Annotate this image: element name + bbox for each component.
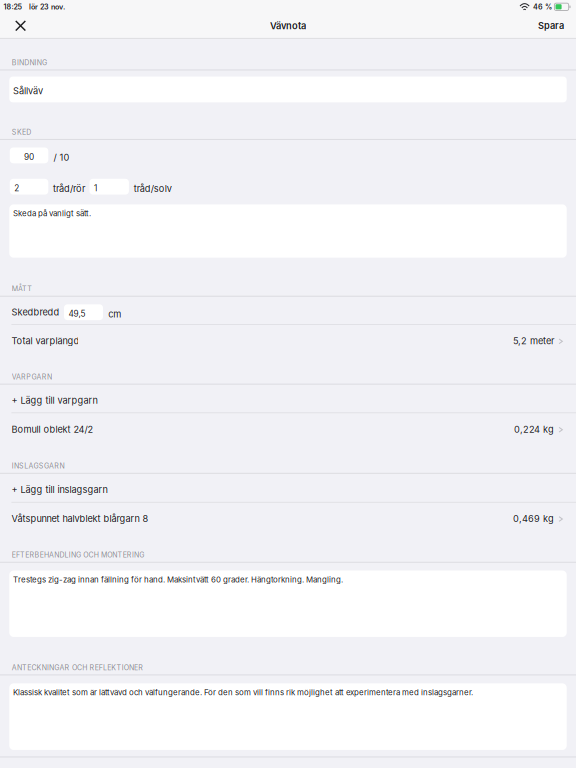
button[interactable]: Trestegs zig-zag innan fällning för hand… bbox=[9, 570, 567, 637]
staticText: Trestegs zig-zag innan fällning för hand… bbox=[13, 575, 343, 584]
staticText: + Lägg till inslagsgarn bbox=[11, 484, 107, 495]
staticText: cm bbox=[108, 309, 121, 320]
staticText: SKED bbox=[12, 128, 31, 136]
button[interactable]: 1 bbox=[89, 179, 129, 195]
staticText: Klassisk kvalitet som är lättvävd och vä… bbox=[13, 688, 473, 697]
staticText: ANTECKNINGAR OCH REFLEKTIONER bbox=[12, 663, 143, 672]
button[interactable]: 90 bbox=[10, 147, 48, 163]
button[interactable]: Skeda på vanligt sätt. bbox=[9, 204, 567, 258]
staticText: Bomull oblekt 24/2 bbox=[11, 424, 93, 435]
button[interactable]: + Lägg till inslagsgarn bbox=[0, 474, 576, 502]
staticText: 2 bbox=[14, 183, 19, 193]
button[interactable]: Total varplängd bbox=[0, 325, 576, 353]
staticText: 46 % bbox=[533, 2, 552, 11]
staticText: 0,469 kg bbox=[513, 513, 554, 524]
staticText: tråd/solv bbox=[134, 183, 172, 194]
staticText: + Lägg till varpgarn bbox=[11, 395, 97, 406]
staticText: 90 bbox=[24, 152, 34, 162]
staticText: Total varplängd bbox=[11, 335, 79, 347]
staticText: INSLAGSGARN bbox=[12, 462, 64, 470]
staticText: BINDNING bbox=[12, 58, 47, 67]
staticText: 18:25 bbox=[4, 2, 23, 11]
staticText: Spara bbox=[538, 20, 564, 31]
button[interactable]: Klassisk kvalitet som är lättvävd och vä… bbox=[9, 683, 567, 750]
staticText: MÅTT bbox=[12, 285, 32, 293]
staticText: Våtspunnet halvblekt blårgarn 8 bbox=[11, 513, 148, 524]
staticText: Sållväv bbox=[13, 85, 43, 96]
staticText: 49,5 bbox=[68, 309, 85, 319]
staticText: / 10 bbox=[53, 152, 69, 163]
staticText: VARPGARN bbox=[12, 373, 52, 381]
staticText: 0,224 kg bbox=[514, 424, 554, 435]
staticText: EFTERBEHANDLING OCH MONTERING bbox=[12, 551, 144, 559]
staticText: Vävnota bbox=[270, 20, 306, 31]
button[interactable]: + Lägg till varpgarn bbox=[0, 384, 576, 412]
button[interactable]: Spara bbox=[528, 13, 576, 38]
button[interactable]: Sållväv bbox=[9, 77, 567, 102]
staticText: Skedbredd bbox=[11, 307, 59, 318]
staticText: lör 23 nov. bbox=[29, 2, 65, 11]
staticText: 5,2 meter bbox=[513, 335, 554, 347]
staticText: 1 bbox=[94, 183, 97, 193]
staticText: Skeda på vanligt sätt. bbox=[13, 209, 91, 218]
button[interactable]: 2 bbox=[10, 179, 48, 195]
button[interactable]: Stäng bbox=[0, 14, 36, 37]
button[interactable]: Bomull oblekt 24/2 bbox=[0, 413, 576, 442]
staticText: tråd/rör bbox=[53, 183, 85, 194]
button[interactable]: Våtspunnet halvblekt blårgarn 8 bbox=[0, 503, 576, 531]
button[interactable]: 49,5 bbox=[64, 304, 103, 320]
